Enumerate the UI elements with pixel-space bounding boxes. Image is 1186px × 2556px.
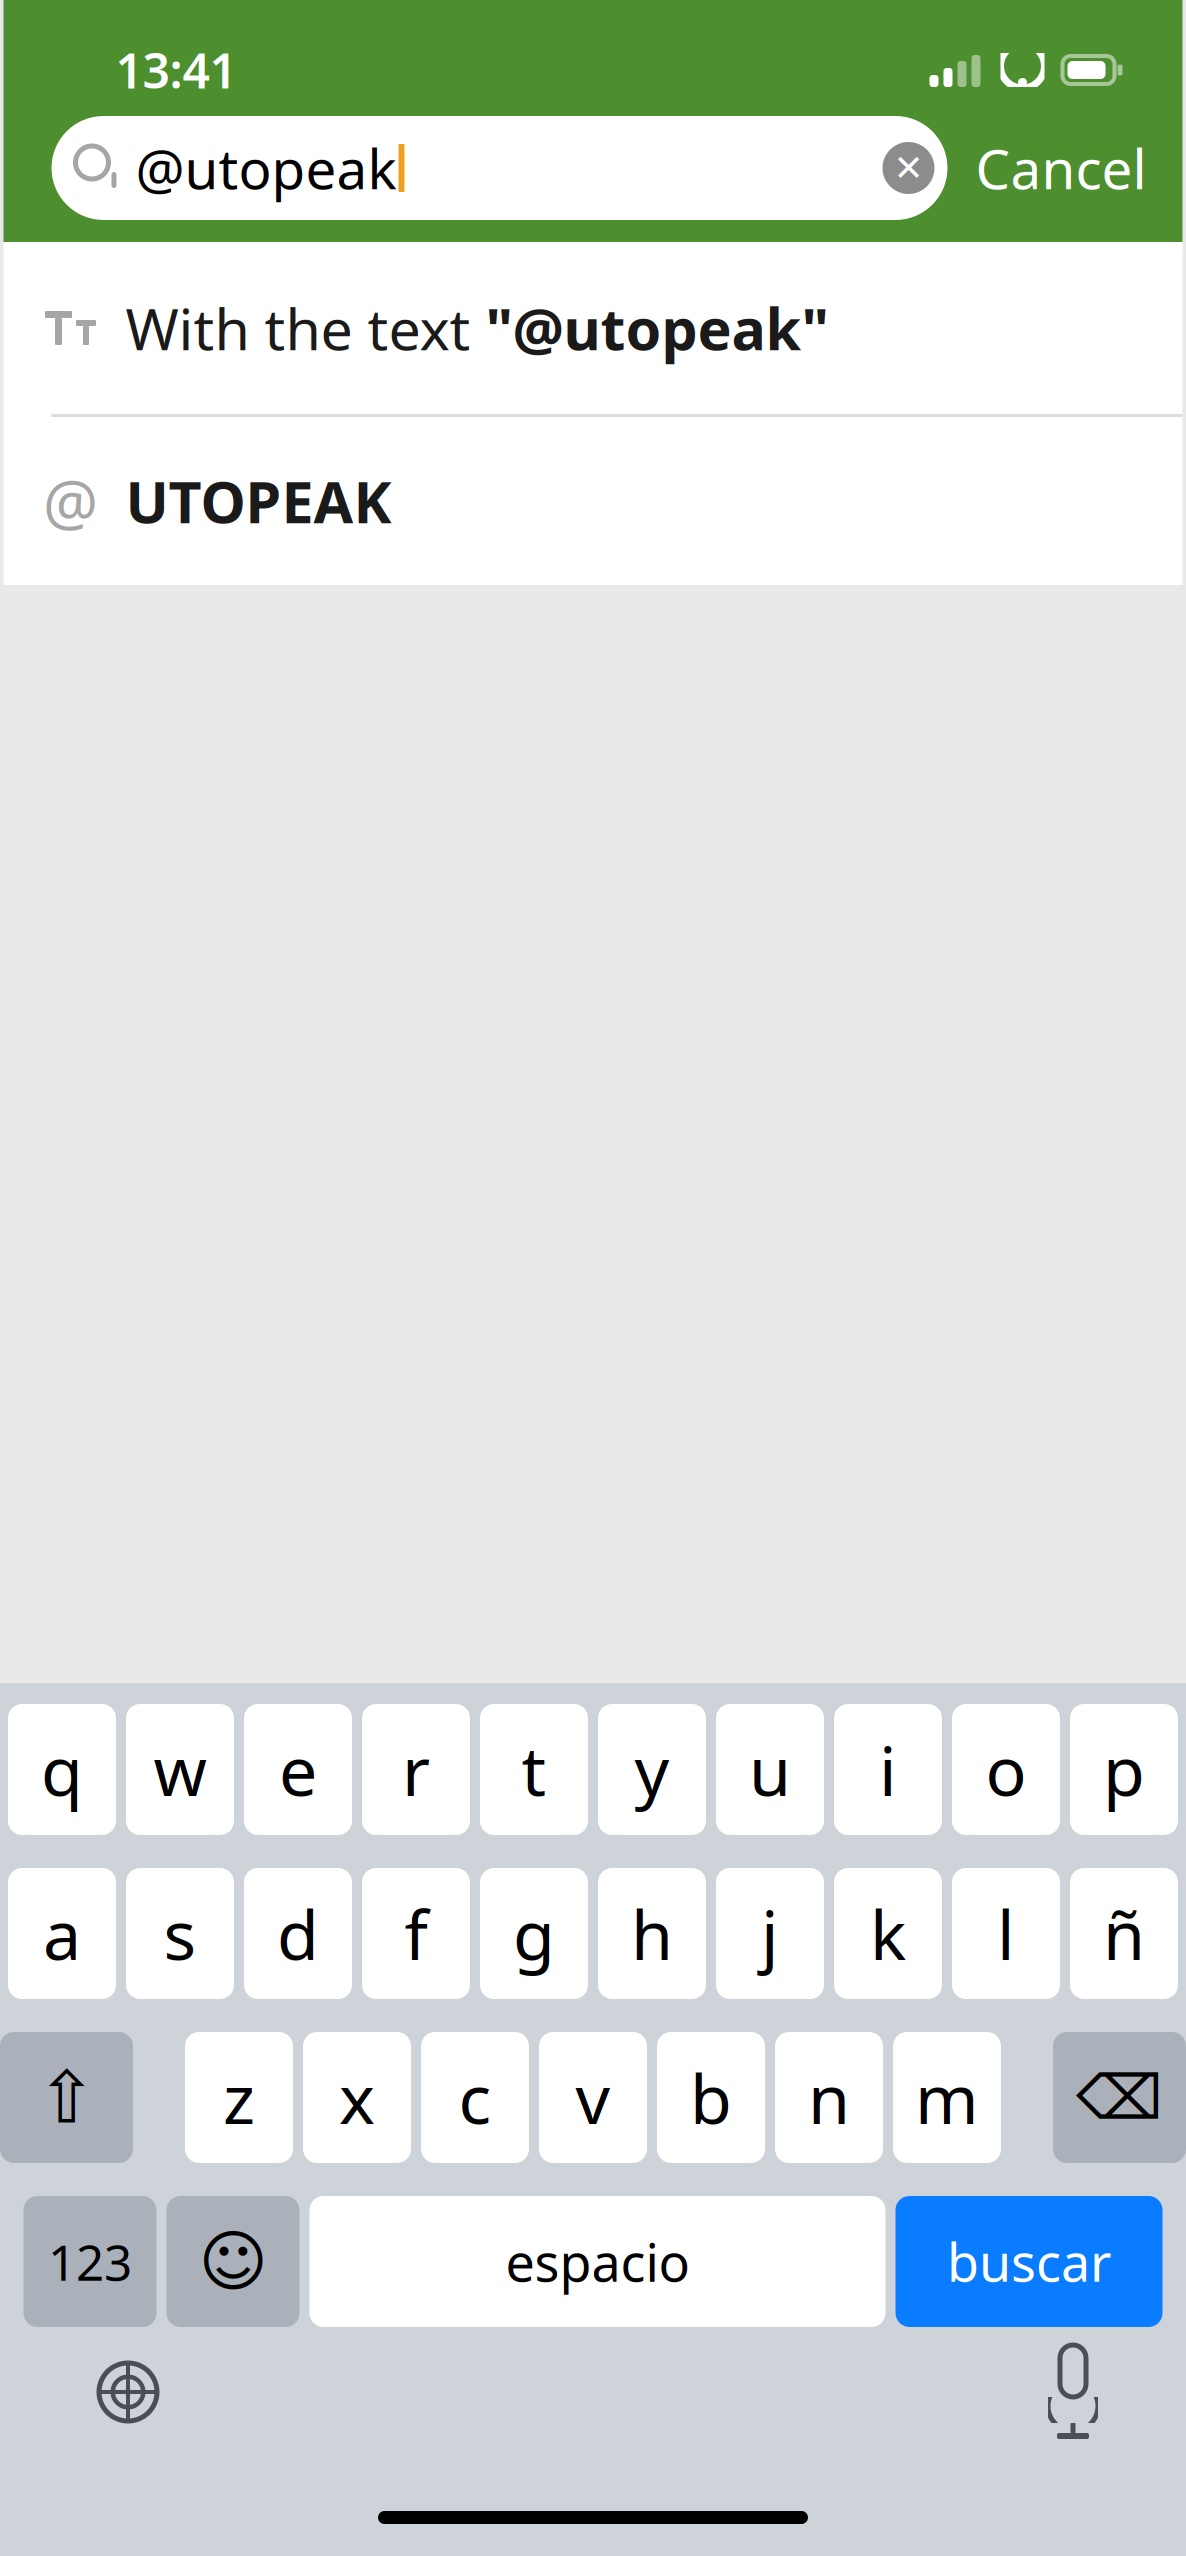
button[interactable]: s	[126, 1868, 234, 1999]
staticText: 13:41	[115, 38, 236, 102]
button[interactable]: Dictate	[1013, 2337, 1133, 2447]
button[interactable]: z	[185, 2032, 293, 2163]
staticText: m	[915, 2052, 979, 2143]
staticText: @utopeak	[135, 132, 396, 204]
button[interactable]: @	[3, 417, 1182, 585]
staticText: k	[870, 1888, 906, 1979]
button[interactable]: c	[421, 2032, 529, 2163]
button[interactable]: h	[598, 1868, 706, 1999]
staticText: ⇧	[36, 2057, 96, 2138]
button[interactable]: ñ	[1070, 1868, 1178, 1999]
button[interactable]: espacio	[309, 2196, 885, 2327]
staticText: s	[163, 1888, 196, 1979]
button[interactable]: u	[716, 1704, 824, 1835]
button[interactable]: j	[716, 1868, 824, 1999]
staticText: g	[513, 1888, 555, 1979]
button[interactable]: 123	[23, 2196, 156, 2327]
button[interactable]: r	[362, 1704, 470, 1835]
staticText: b	[690, 2052, 732, 2143]
staticText: q	[41, 1724, 83, 1815]
staticText: UTOPEAK	[125, 463, 391, 539]
button[interactable]: Delete	[1053, 2032, 1186, 2163]
button[interactable]: a	[8, 1868, 116, 1999]
staticText: a	[43, 1888, 81, 1979]
staticText: ☺	[198, 2224, 267, 2299]
staticText: x	[339, 2052, 375, 2143]
button[interactable]: p	[1070, 1704, 1178, 1835]
staticText: z	[223, 2052, 255, 2143]
staticText: With the text	[125, 290, 485, 366]
staticText: w	[153, 1724, 206, 1815]
button[interactable]: Shift	[0, 2032, 133, 2163]
button[interactable]: buscar	[895, 2196, 1162, 2327]
staticText: espacio	[505, 2227, 689, 2296]
button[interactable]: w	[126, 1704, 234, 1835]
staticText: i	[879, 1724, 897, 1815]
button[interactable]: Emoji	[166, 2196, 299, 2327]
staticText: v	[575, 2052, 610, 2143]
button[interactable]: g	[480, 1868, 588, 1999]
staticText: buscar	[947, 2227, 1111, 2296]
button[interactable]: With the text	[3, 242, 1182, 414]
button[interactable]: y	[598, 1704, 706, 1835]
button[interactable]: n	[775, 2032, 883, 2163]
staticText: ✕	[893, 148, 923, 188]
button[interactable]: i	[834, 1704, 942, 1835]
button[interactable]: f	[362, 1868, 470, 1999]
button[interactable]: k	[834, 1868, 942, 1999]
button[interactable]: o	[952, 1704, 1060, 1835]
staticText: f	[404, 1888, 427, 1979]
button[interactable]: b	[657, 2032, 765, 2163]
staticText: c	[458, 2052, 491, 2143]
staticText: p	[1103, 1724, 1145, 1815]
button[interactable]: v	[539, 2032, 647, 2163]
button[interactable]: l	[952, 1868, 1060, 1999]
staticText: ñ	[1103, 1888, 1145, 1979]
button[interactable]: q	[8, 1704, 116, 1835]
staticText: "@utopeak"	[485, 290, 828, 366]
staticText: n	[808, 2052, 850, 2143]
button[interactable]: t	[480, 1704, 588, 1835]
staticText: j	[761, 1888, 779, 1979]
button[interactable]: x	[303, 2032, 411, 2163]
staticText: e	[279, 1724, 317, 1815]
staticText: Cancel	[975, 132, 1146, 204]
staticText: h	[631, 1888, 673, 1979]
button[interactable]: d	[244, 1868, 352, 1999]
staticText: t	[521, 1724, 546, 1815]
staticText: u	[749, 1724, 791, 1815]
button[interactable]: m	[893, 2032, 1001, 2163]
button[interactable]: e	[244, 1704, 352, 1835]
staticText: 123	[48, 2229, 132, 2294]
button[interactable]: Clear text	[869, 116, 947, 220]
staticText: ⌫	[1076, 2063, 1163, 2132]
staticText: l	[997, 1888, 1015, 1979]
staticText: r	[402, 1724, 430, 1815]
button[interactable]: Next keyboard	[68, 2337, 188, 2447]
staticText: d	[277, 1888, 319, 1979]
button[interactable]: Cancel	[947, 116, 1160, 220]
staticText: @	[43, 460, 98, 542]
staticText: y	[634, 1724, 669, 1815]
staticText: o	[985, 1724, 1026, 1815]
